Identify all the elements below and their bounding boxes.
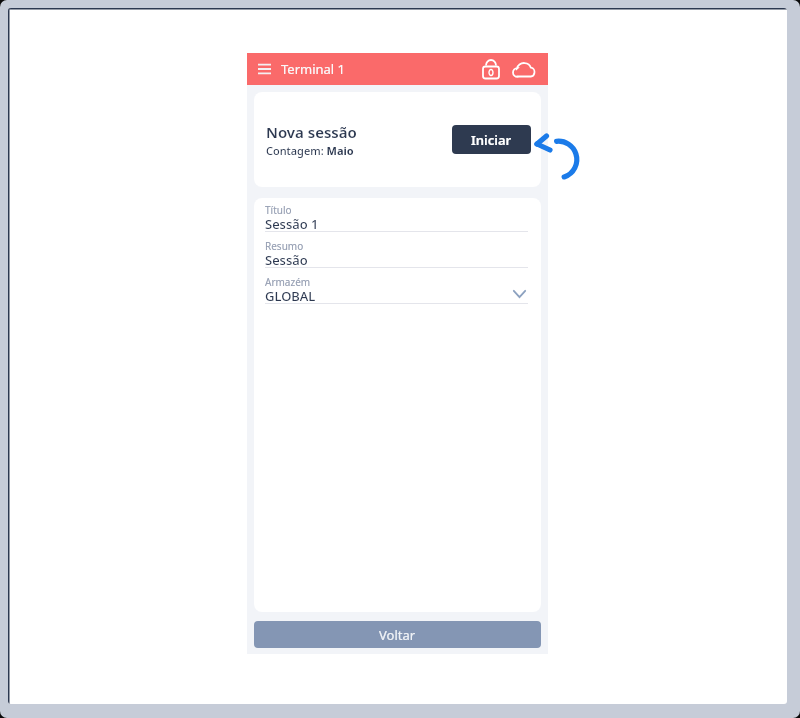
staticText: Sessão 1	[265, 215, 319, 229]
staticText: Voltar	[379, 626, 416, 644]
staticText: Contagem: Maio	[266, 143, 354, 158]
button[interactable]	[483, 60, 499, 79]
staticText: Título	[265, 203, 292, 214]
staticText: Resumo	[265, 239, 304, 250]
button[interactable]	[258, 64, 271, 74]
staticText: Iniciar	[471, 131, 512, 149]
button[interactable]: Voltar	[254, 621, 541, 648]
staticText: Armazém	[265, 275, 311, 286]
button[interactable]: Iniciar	[452, 125, 531, 154]
staticText: GLOBAL	[265, 287, 316, 301]
staticText: Terminal 1	[281, 60, 346, 78]
button[interactable]: Terminal 1	[247, 53, 548, 85]
button[interactable]	[511, 61, 536, 78]
staticText: Sessão	[265, 251, 308, 265]
staticText: Nova sessão	[266, 122, 357, 142]
